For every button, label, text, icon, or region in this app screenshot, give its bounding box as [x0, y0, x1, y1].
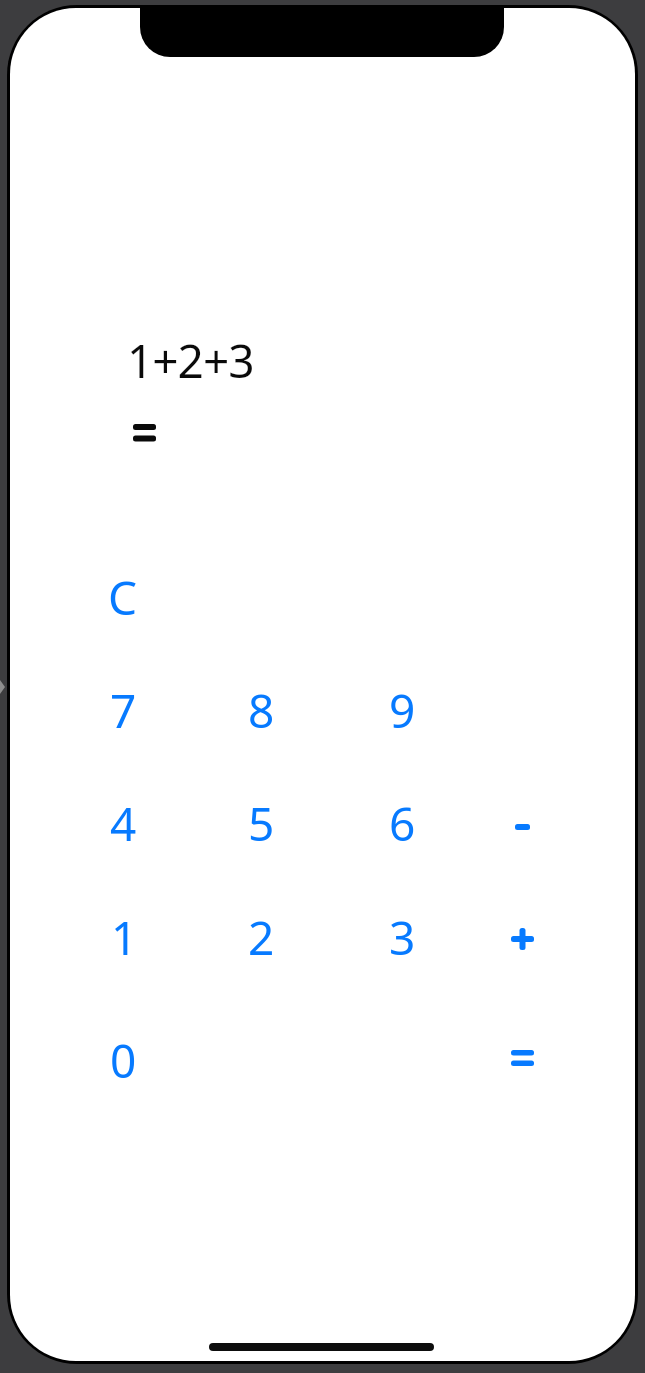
staticText: 5	[248, 792, 275, 855]
staticText: 2	[248, 906, 275, 969]
button[interactable]: 6	[337, 771, 467, 875]
staticText: 3	[389, 906, 416, 969]
staticText: 9	[389, 679, 416, 742]
button[interactable]	[457, 1006, 587, 1110]
staticText: 6	[389, 792, 416, 855]
staticText: 0	[110, 1029, 137, 1092]
button[interactable]: 0	[58, 1008, 188, 1112]
button[interactable]: C	[58, 545, 188, 649]
staticText: 7	[110, 679, 137, 742]
button[interactable]	[457, 775, 587, 879]
staticText: 1+2+3	[127, 329, 254, 392]
button[interactable]: 5	[196, 771, 326, 875]
button[interactable]: 4	[58, 771, 188, 875]
staticText: 1	[111, 906, 138, 969]
button[interactable]	[457, 887, 587, 991]
button[interactable]: 7	[58, 658, 188, 762]
staticText: 8	[248, 679, 275, 742]
button[interactable]: 2	[196, 885, 326, 989]
button[interactable]: 8	[196, 658, 326, 762]
button[interactable]: 3	[337, 885, 467, 989]
staticText: C	[108, 566, 138, 629]
button[interactable]: 9	[337, 658, 467, 762]
staticText: 4	[110, 792, 137, 855]
button[interactable]: 1	[59, 885, 189, 989]
